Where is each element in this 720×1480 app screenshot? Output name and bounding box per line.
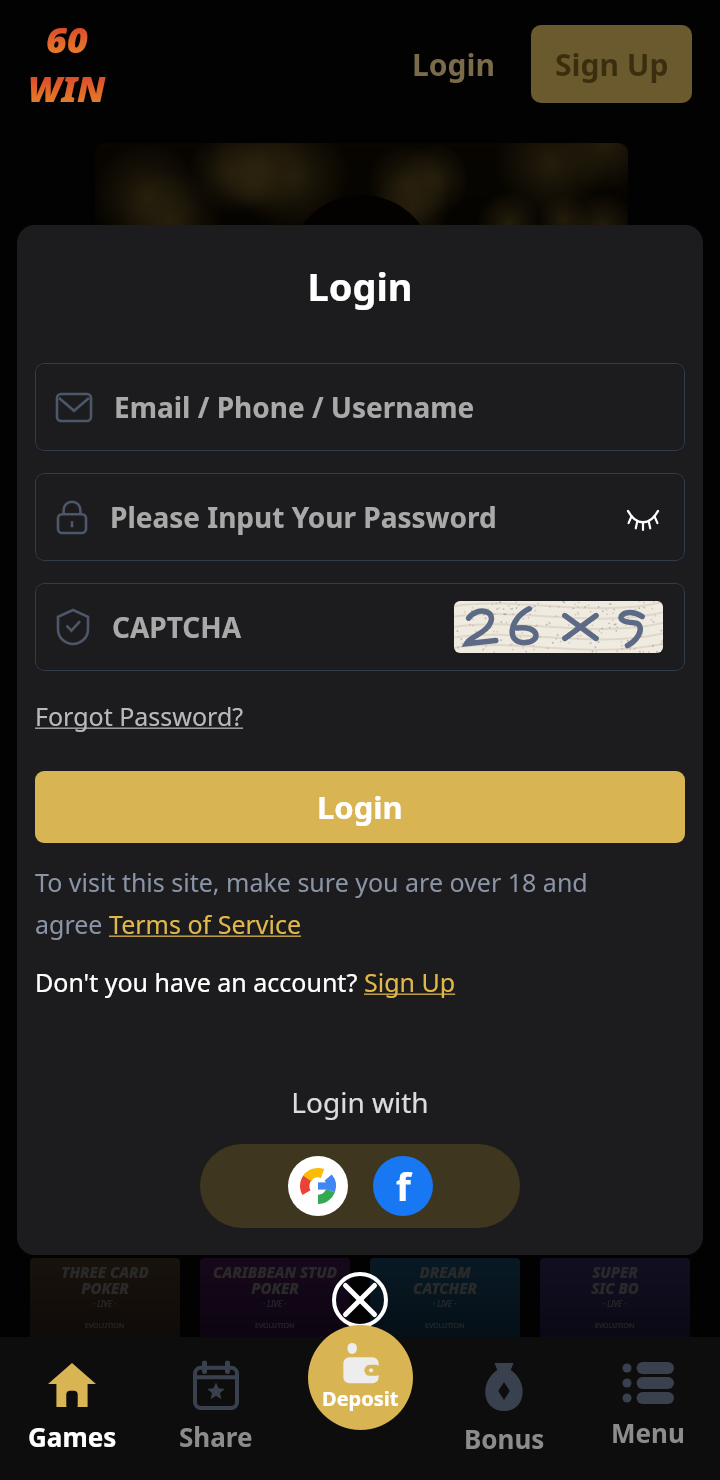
- staticText: CARIBBEAN STUD POKER: [213, 1262, 337, 1298]
- button[interactable]: Menu: [576, 1337, 720, 1480]
- staticText: f: [396, 1160, 411, 1212]
- staticText: Login: [317, 786, 403, 828]
- button[interactable]: Show password: [623, 497, 663, 537]
- staticText: CAPTCHA: [112, 608, 242, 646]
- staticText: · LIVE ·: [433, 1298, 457, 1309]
- staticText: SUPER SIC BO: [591, 1262, 639, 1298]
- button[interactable]: Terms of Service: [109, 907, 302, 941]
- staticText: Share: [179, 1419, 253, 1454]
- button[interactable]: Games: [0, 1337, 144, 1480]
- staticText: Terms of Service: [109, 907, 302, 941]
- staticText: EVOLUTION: [425, 1321, 465, 1331]
- staticText: Sign Up: [555, 44, 669, 85]
- staticText: EVOLUTION: [85, 1321, 125, 1331]
- button[interactable]: Login with Google: [288, 1156, 348, 1216]
- button[interactable]: Login: [35, 771, 685, 843]
- staticText: Forgot Password?: [35, 699, 244, 733]
- staticText: Login: [412, 44, 495, 85]
- staticText: WIN: [28, 64, 106, 113]
- button[interactable]: Sign Up: [531, 25, 692, 103]
- staticText: 60: [46, 15, 88, 64]
- staticText: Menu: [611, 1415, 685, 1450]
- staticText: THREE CARD POKER: [61, 1262, 149, 1298]
- staticText: Login: [17, 260, 703, 312]
- staticText: · LIVE ·: [93, 1298, 117, 1309]
- button[interactable]: SUPER SIC BO: [540, 1258, 690, 1344]
- staticText: Deposit: [322, 1385, 399, 1412]
- staticText: EVOLUTION: [595, 1321, 635, 1331]
- staticText: Bonus: [464, 1421, 545, 1456]
- button[interactable]: Please Input Your Password: [35, 473, 685, 561]
- staticText: Please Input Your Password: [110, 498, 497, 536]
- button[interactable]: Login with Facebook: [373, 1156, 433, 1216]
- staticText: Email / Phone / Username: [114, 388, 475, 426]
- button[interactable]: Email / Phone / Username: [35, 363, 685, 451]
- button[interactable]: DREAM CATCHER: [370, 1258, 520, 1344]
- button[interactable]: Share: [144, 1337, 288, 1480]
- staticText: Login with: [17, 1083, 703, 1121]
- button[interactable]: Forgot Password?: [35, 699, 244, 733]
- staticText: agree: [35, 907, 109, 941]
- button[interactable]: CARIBBEAN STUD POKER: [200, 1258, 350, 1344]
- button[interactable]: Deposit: [308, 1325, 413, 1430]
- staticText: Don't you have an account?: [35, 965, 364, 999]
- button[interactable]: 60WIN home: [28, 15, 106, 113]
- button[interactable]: CAPTCHA: [35, 583, 685, 671]
- button[interactable]: Login: [398, 36, 509, 93]
- staticText: EVOLUTION: [255, 1321, 295, 1331]
- button[interactable]: Close: [332, 1272, 388, 1328]
- staticText: · LIVE ·: [603, 1298, 627, 1309]
- staticText: To visit this site, make sure you are ov…: [35, 865, 588, 899]
- button[interactable]: Bonus: [432, 1337, 576, 1480]
- button[interactable]: THREE CARD POKER: [30, 1258, 180, 1344]
- staticText: Games: [28, 1419, 117, 1454]
- staticText: Sign Up: [364, 965, 456, 999]
- staticText: DREAM CATCHER: [413, 1262, 477, 1298]
- button[interactable]: Refresh captcha: [454, 601, 663, 653]
- button[interactable]: Sign Up: [364, 965, 456, 999]
- staticText: · LIVE ·: [263, 1298, 287, 1309]
